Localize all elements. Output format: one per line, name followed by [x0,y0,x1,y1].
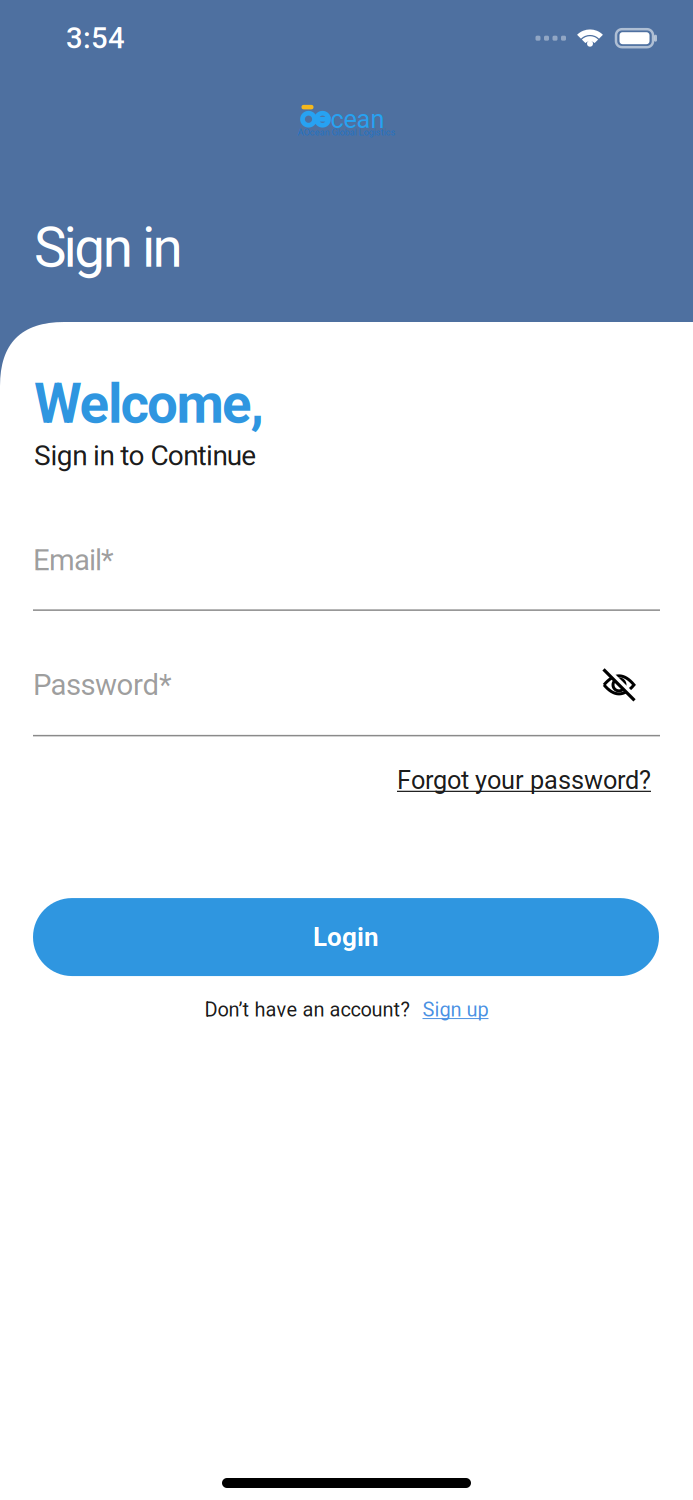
staticText: cean [330,104,384,134]
button[interactable]: Login [33,898,659,976]
button[interactable]: Email* [0,543,693,611]
staticText: Sign in to Continue [34,439,256,472]
staticText: Login [313,922,379,952]
staticText: Forgot your password? [397,765,651,795]
staticText: Password* [33,668,172,702]
button[interactable]: Forgot your password? [397,765,651,795]
button[interactable]: Sign up [422,998,488,1021]
staticText: Email* [33,543,114,577]
staticText: Welcome, [34,372,263,436]
button[interactable]: Password* [0,667,693,736]
staticText: Sign up [422,998,488,1021]
button[interactable] [601,667,637,703]
staticText: Don’t have an account? [204,998,409,1021]
staticText: 3:54 [66,21,125,55]
staticText: AOcean Global Logistics [297,127,395,138]
staticText: Sign in [34,216,183,280]
